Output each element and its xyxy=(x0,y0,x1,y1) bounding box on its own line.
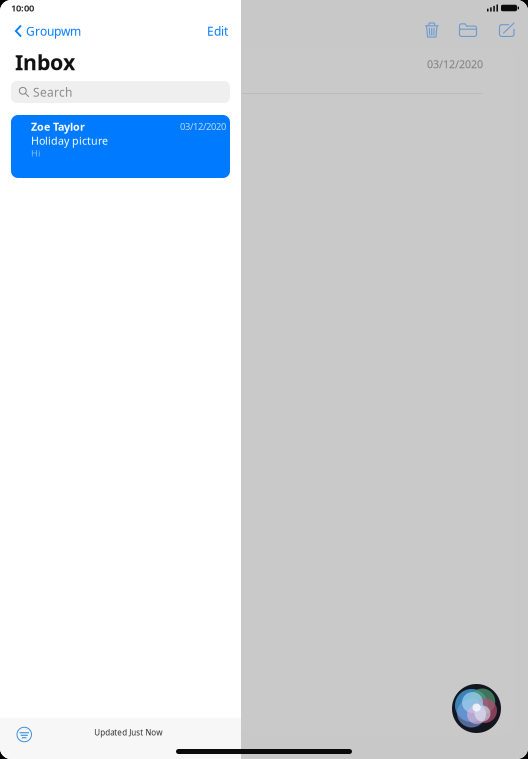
button[interactable]: Edit xyxy=(207,19,241,43)
button[interactable]: Zoe Taylor xyxy=(0,115,241,178)
staticText: 03/12/2020 xyxy=(427,57,483,71)
staticText: Groupwm xyxy=(26,23,81,39)
staticText: Holiday picture xyxy=(31,133,108,148)
button[interactable]: Groupwm xyxy=(0,19,81,43)
staticText: Zoe Taylor xyxy=(31,119,85,134)
staticText: 03/12/2020 xyxy=(180,120,226,133)
staticText: Hi xyxy=(31,147,40,159)
staticText: 10:00 xyxy=(11,2,34,14)
staticText: Edit xyxy=(207,23,228,39)
button[interactable]: Compose xyxy=(492,16,521,44)
staticText: Search xyxy=(33,84,72,100)
button[interactable]: Delete xyxy=(418,15,445,45)
button[interactable]: Filter xyxy=(0,719,39,746)
staticText: Inbox xyxy=(15,48,75,76)
staticText: Updated Just Now xyxy=(94,727,162,738)
button[interactable]: Move to folder xyxy=(452,16,483,44)
